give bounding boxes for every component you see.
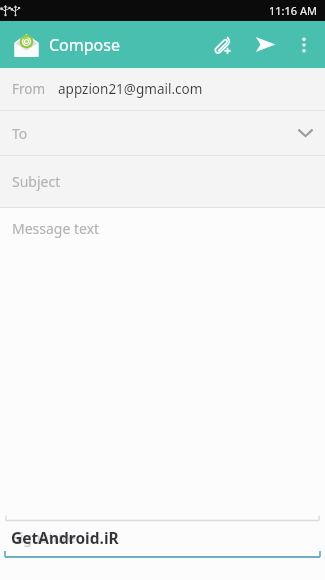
staticText: To [12,124,28,143]
button[interactable]: Expand recipients [285,113,325,153]
staticText: Message text [12,219,100,238]
button[interactable]: Attach file [201,21,243,68]
button[interactable]: Message text [0,208,325,513]
button[interactable]: More options [287,21,321,68]
staticText: 11:16 AM [269,3,317,18]
button[interactable]: Signature [0,522,325,552]
staticText: appzion21@gmail.com [58,80,203,98]
staticText: Compose [49,34,120,56]
staticText: GetAndroid.iR [11,527,119,548]
staticText: Signature [12,528,76,547]
button[interactable]: From [0,68,325,110]
button[interactable]: To [0,111,325,155]
staticText: Subject [12,172,61,191]
button[interactable]: Subject [0,156,325,207]
staticText: From [12,80,46,98]
button[interactable]: Navigate up [12,31,40,59]
button[interactable]: Send [243,21,287,68]
